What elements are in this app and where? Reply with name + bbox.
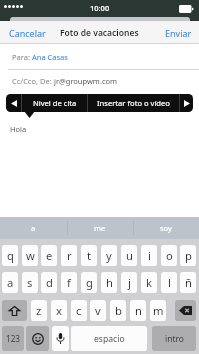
staticText: m xyxy=(153,303,164,318)
button[interactable]: espacio xyxy=(71,326,147,351)
staticText: Para: xyxy=(12,52,30,62)
button[interactable]: d xyxy=(41,272,57,293)
button[interactable]: v xyxy=(90,300,106,321)
staticText: me xyxy=(94,223,106,233)
staticText: b xyxy=(115,303,122,318)
button[interactable]: Borrar xyxy=(175,300,196,321)
button[interactable]: h xyxy=(101,272,117,293)
staticText: u xyxy=(126,248,133,263)
staticText: soy xyxy=(160,223,172,233)
button[interactable]: intro xyxy=(152,326,196,351)
button[interactable]: Enviar xyxy=(159,24,199,42)
button[interactable]: Para: xyxy=(0,44,199,70)
staticText: Foto de vacaciones xyxy=(60,27,139,39)
button[interactable]: e xyxy=(41,245,57,266)
staticText: w xyxy=(26,248,35,263)
staticText: Cc/Cco, De: xyxy=(12,76,52,86)
button[interactable]: a xyxy=(0,217,67,239)
button[interactable]: l xyxy=(161,272,177,293)
staticText: Ana Casas xyxy=(32,52,68,62)
button[interactable]: p xyxy=(180,245,196,266)
button[interactable]: o xyxy=(161,245,177,266)
staticText: jr@groupwm.com xyxy=(54,76,118,86)
button[interactable]: Anterior xyxy=(6,94,21,112)
button[interactable]: y xyxy=(101,245,117,266)
staticText: 123 xyxy=(6,333,21,344)
button[interactable]: me xyxy=(67,217,133,239)
button[interactable]: Cancelar xyxy=(0,24,52,42)
button[interactable]: Siguiente xyxy=(180,94,193,112)
staticText: t xyxy=(87,248,92,263)
staticText: ñ xyxy=(185,275,192,290)
staticText: 10:00 xyxy=(90,3,110,13)
staticText: c xyxy=(76,303,82,318)
button[interactable]: a xyxy=(2,272,18,293)
button[interactable]: n xyxy=(130,300,146,321)
staticText: q xyxy=(7,248,14,263)
button[interactable]: k xyxy=(141,272,157,293)
staticText: o xyxy=(166,248,173,263)
button[interactable]: Emoji xyxy=(26,326,49,351)
button[interactable]: w xyxy=(22,245,38,266)
staticText: v xyxy=(95,303,101,318)
staticText: d xyxy=(46,275,53,290)
staticText: p xyxy=(185,248,192,263)
staticText: s xyxy=(27,275,33,290)
staticText: n xyxy=(135,303,142,318)
staticText: e xyxy=(46,248,53,263)
staticText: x xyxy=(56,303,62,318)
button[interactable]: soy xyxy=(133,217,199,239)
staticText: g xyxy=(86,275,93,290)
button[interactable]: j xyxy=(121,272,137,293)
button[interactable]: b xyxy=(110,300,126,321)
staticText: y xyxy=(106,248,112,263)
staticText: a xyxy=(7,275,14,290)
staticText: l xyxy=(168,275,171,290)
button[interactable]: Mayúsculas xyxy=(2,300,27,321)
button[interactable]: r xyxy=(61,245,77,266)
button[interactable]: t xyxy=(81,245,97,266)
staticText: r xyxy=(67,248,72,263)
staticText: a xyxy=(31,223,36,233)
button[interactable]: Nivel de cita xyxy=(22,94,87,112)
staticText: Cancelar xyxy=(9,27,46,39)
button[interactable]: g xyxy=(81,272,97,293)
staticText: espacio xyxy=(94,333,125,345)
button[interactable]: Dictado xyxy=(52,326,69,351)
button[interactable]: f xyxy=(61,272,77,293)
staticText: f xyxy=(67,275,71,290)
staticText: i xyxy=(148,248,151,263)
staticText: Enviar xyxy=(165,27,192,39)
staticText: Insertar foto o vídeo xyxy=(97,98,170,108)
staticText: z xyxy=(36,303,42,318)
button[interactable]: Cc/Cco, De: xyxy=(0,70,199,94)
button[interactable]: x xyxy=(51,300,67,321)
staticText: Nivel de cita xyxy=(33,98,77,108)
button[interactable]: i xyxy=(141,245,157,266)
staticText: Hola xyxy=(10,124,27,134)
button[interactable]: u xyxy=(121,245,137,266)
staticText: h xyxy=(106,275,113,290)
button[interactable]: ñ xyxy=(180,272,196,293)
staticText: k xyxy=(146,275,152,290)
button[interactable]: 123 xyxy=(2,326,24,351)
button[interactable]: m xyxy=(150,300,166,321)
staticText: intro xyxy=(165,333,184,345)
button[interactable]: z xyxy=(31,300,47,321)
button[interactable]: q xyxy=(2,245,18,266)
button[interactable]: s xyxy=(22,272,38,293)
staticText: j xyxy=(128,275,131,290)
button[interactable]: Insertar foto o vídeo xyxy=(88,94,179,112)
button[interactable]: c xyxy=(71,300,87,321)
